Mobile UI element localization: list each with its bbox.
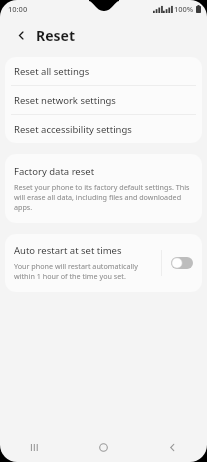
button[interactable]: Back — [138, 432, 207, 462]
staticText: Auto restart at set times — [14, 244, 122, 257]
staticText: Your phone will restart automatically wi… — [14, 261, 153, 281]
button[interactable]: Back — [10, 24, 32, 46]
button[interactable]: Factory data reset — [5, 154, 202, 223]
button[interactable]: Reset accessibility settings — [5, 115, 202, 143]
button[interactable]: Home — [69, 432, 138, 462]
staticText: Reset all settings — [14, 65, 90, 78]
staticText: 10:00 — [8, 4, 28, 14]
staticText: Factory data reset — [14, 165, 95, 178]
button[interactable]: Reset all settings — [5, 57, 202, 85]
staticText: Reset your phone to its factory default … — [14, 182, 190, 212]
button[interactable]: Auto restart at set times toggle — [162, 245, 202, 281]
staticText: 100% — [174, 4, 194, 14]
button[interactable]: Reset network settings — [5, 86, 202, 114]
button[interactable]: Auto restart at set times — [5, 234, 161, 292]
button[interactable]: Recent apps — [0, 432, 69, 462]
staticText: Reset — [36, 26, 76, 45]
staticText: Reset network settings — [14, 94, 116, 107]
staticText: Reset accessibility settings — [14, 123, 132, 136]
